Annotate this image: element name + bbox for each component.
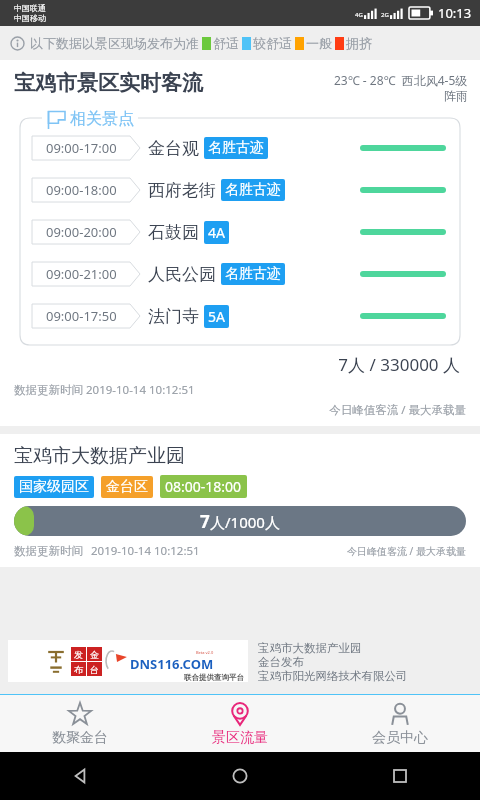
button[interactable]: 09:00-17:00 bbox=[20, 127, 460, 169]
staticText: 发 bbox=[74, 649, 83, 660]
staticText: 西府老街 bbox=[148, 180, 216, 201]
button[interactable]: 09:00-17:50 bbox=[20, 295, 460, 337]
staticText: 会员中心 bbox=[372, 729, 428, 747]
staticText: 相关景点 bbox=[70, 109, 134, 129]
staticText: Beta v2.0 bbox=[196, 650, 214, 655]
staticText: 金台观 bbox=[148, 138, 199, 159]
staticText: 08:00-18:00 bbox=[165, 477, 242, 496]
staticText: 7人 / 330000 人 bbox=[0, 353, 460, 376]
button[interactable]: Recents bbox=[320, 752, 480, 800]
staticText: 人/1000人 bbox=[210, 512, 280, 532]
staticText: 阵雨 bbox=[444, 88, 468, 103]
staticText: 7 bbox=[200, 510, 210, 533]
staticText: 10:13 bbox=[438, 4, 472, 22]
staticText: 较舒适 bbox=[253, 35, 292, 51]
button[interactable]: 会员中心 bbox=[320, 695, 480, 752]
button[interactable]: 景区流量 bbox=[160, 695, 320, 752]
button[interactable]: 09:00-21:00 bbox=[20, 253, 460, 295]
staticText: 今日峰值客流 / 最大承载量 bbox=[347, 544, 466, 558]
button[interactable]: 09:00-18:00 bbox=[20, 169, 460, 211]
staticText: 金台发布 bbox=[258, 655, 304, 669]
staticText: 联合提供查询平台 bbox=[184, 673, 244, 682]
staticText: 宝鸡市景区实时客流 bbox=[14, 70, 203, 96]
staticText: 数聚金台 bbox=[52, 729, 108, 747]
staticText: 宝鸡市阳光网络技术有限公司 bbox=[258, 669, 408, 683]
staticText: 名胜古迹 bbox=[208, 139, 264, 157]
staticText: 09:00-17:50 bbox=[46, 307, 117, 325]
staticText: 舒适 bbox=[213, 35, 239, 51]
button[interactable]: 数聚金台 bbox=[0, 695, 160, 752]
staticText: 今日峰值客流 / 最大承载量 bbox=[0, 402, 466, 418]
staticText: DNS116.COM bbox=[130, 655, 214, 673]
staticText: 布 bbox=[74, 664, 83, 675]
button[interactable]: 09:00-20:00 bbox=[20, 211, 460, 253]
staticText: 4G bbox=[355, 11, 363, 19]
staticText: 宝鸡市大数据产业园 bbox=[14, 444, 185, 468]
staticText: 2019-10-14 10:12:51 bbox=[91, 543, 200, 559]
staticText: 人民公园 bbox=[148, 264, 216, 285]
staticText: 名胜古迹 bbox=[225, 181, 281, 199]
staticText: 宝鸡市大数据产业园 bbox=[258, 641, 362, 655]
staticText: 景区流量 bbox=[212, 729, 268, 747]
staticText: 09:00-20:00 bbox=[46, 223, 117, 241]
staticText: 金台区 bbox=[106, 478, 148, 496]
staticText: 拥挤 bbox=[346, 35, 372, 51]
staticText: 国家级园区 bbox=[19, 478, 89, 496]
staticText: 中国移动 bbox=[14, 13, 46, 23]
staticText: 2G bbox=[381, 11, 389, 19]
staticText: 09:00-18:00 bbox=[46, 181, 117, 199]
staticText: 中国联通 bbox=[14, 3, 46, 13]
staticText: 以下数据以景区现场发布为准 bbox=[30, 35, 199, 51]
staticText: 数据更新时间 2019-10-14 10:12:51 bbox=[14, 382, 195, 398]
staticText: 数据更新时间 bbox=[14, 544, 83, 558]
staticText: 金 bbox=[90, 649, 99, 660]
staticText: 09:00-17:00 bbox=[46, 139, 117, 157]
button[interactable]: Home bbox=[160, 752, 320, 800]
staticText: 5A bbox=[208, 307, 225, 326]
staticText: 名胜古迹 bbox=[225, 265, 281, 283]
staticText: 23℃ - 28℃ 西北风4-5级 bbox=[334, 72, 468, 88]
staticText: 石鼓园 bbox=[148, 222, 199, 243]
staticText: 法门寺 bbox=[148, 306, 199, 327]
staticText: 一般 bbox=[306, 35, 332, 51]
button[interactable]: 宝鸡市大数据产业园 bbox=[0, 434, 480, 567]
staticText: 4A bbox=[208, 223, 225, 242]
staticText: 09:00-21:00 bbox=[46, 265, 117, 283]
button[interactable]: Back bbox=[0, 752, 160, 800]
staticText: 台 bbox=[90, 664, 99, 675]
